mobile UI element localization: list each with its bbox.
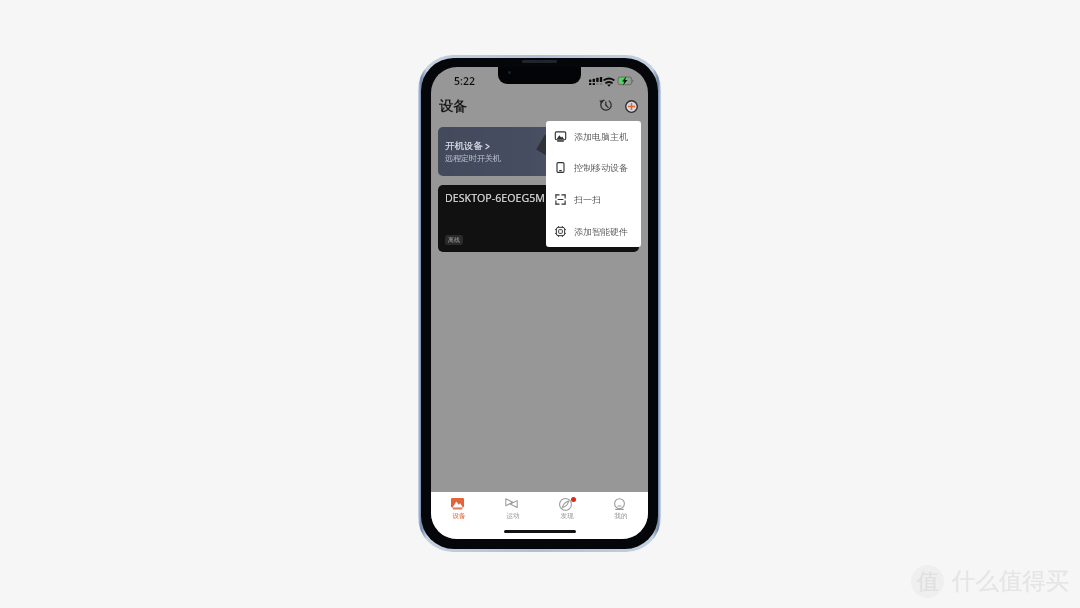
button[interactable]: 运动 [486, 498, 540, 524]
staticText: 设备 [439, 98, 467, 116]
staticText: 发现 [560, 512, 574, 520]
button[interactable]: 扫一扫 [546, 183, 641, 215]
button[interactable]: History [595, 94, 617, 116]
staticText: 5:22 [454, 74, 475, 88]
staticText: 添加电脑主机 [574, 131, 628, 142]
staticText: 控制移动设备 [574, 162, 628, 173]
button[interactable]: 添加智能硬件 [546, 215, 641, 247]
staticText: 离线 [448, 236, 460, 244]
staticText: DESKTOP-6EOEG5M [445, 191, 546, 205]
button[interactable]: 设备 [431, 498, 486, 524]
button[interactable]: 添加电脑主机 [546, 121, 641, 152]
staticText: 什么值得买 [952, 566, 1069, 595]
staticText: 我的 [614, 512, 628, 520]
button[interactable]: Add device [620, 95, 642, 117]
button[interactable]: 我的 [594, 498, 648, 524]
button[interactable]: 控制移动设备 [546, 152, 641, 183]
staticText: 添加智能硬件 [574, 226, 628, 237]
staticText: 值 [917, 568, 939, 596]
staticText: 扫一扫 [574, 194, 601, 205]
button[interactable]: DESKTOP-6EOEG5M [438, 185, 639, 252]
staticText: 设备 [452, 512, 466, 520]
button[interactable]: 发现 [540, 498, 594, 524]
staticText: 远程定时开关机 [445, 153, 501, 163]
staticText: 开机设备 [445, 140, 483, 152]
button[interactable]: 开机设备 [438, 127, 639, 176]
staticText: 运动 [506, 512, 520, 520]
